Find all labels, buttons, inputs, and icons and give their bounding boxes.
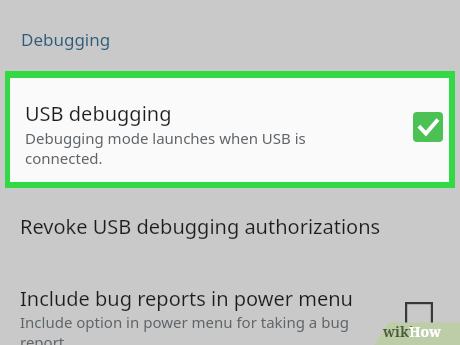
staticText: wiki — [383, 322, 414, 341]
staticText: Include bug reports in power menu — [20, 285, 353, 312]
button[interactable]: USB debugging — [5, 71, 455, 188]
button[interactable]: Revoke USB debugging authorizations — [0, 196, 460, 258]
button[interactable]: Include bug reports, off — [405, 302, 433, 330]
staticText: How — [409, 322, 442, 341]
staticText: Include option in power menu for taking … — [20, 312, 349, 345]
button[interactable]: Include bug reports in power menu — [0, 276, 460, 345]
staticText: USB debugging — [25, 100, 172, 127]
staticText: Debugging — [21, 28, 111, 51]
staticText: Revoke USB debugging authorizations — [20, 213, 381, 240]
staticText: Debugging mode launches when USB is conn… — [25, 128, 306, 168]
button[interactable]: Debugging — [21, 28, 111, 51]
button[interactable]: USB debugging enabled — [413, 112, 443, 142]
